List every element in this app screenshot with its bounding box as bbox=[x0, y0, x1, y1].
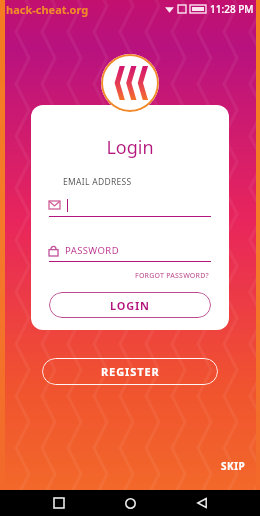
button[interactable]: Password bbox=[49, 239, 211, 261]
staticText: hack-cheat.org bbox=[6, 2, 89, 17]
button[interactable]: REGISTER bbox=[42, 358, 218, 385]
button[interactable]: Recent apps bbox=[46, 490, 72, 516]
other: Password bbox=[49, 245, 58, 256]
button[interactable]: LOGIN bbox=[49, 292, 211, 318]
other: Email bbox=[49, 201, 60, 209]
button[interactable]: FORGOT PASSWORD? bbox=[133, 269, 211, 283]
staticText: 11:28 PM bbox=[210, 2, 254, 16]
staticText: LOGIN bbox=[110, 298, 150, 313]
button[interactable]: SKIP bbox=[218, 456, 249, 476]
staticText: EMAIL ADDRESS bbox=[63, 176, 132, 188]
button[interactable]: Back bbox=[189, 490, 215, 516]
staticText: PASSWORD bbox=[65, 244, 119, 257]
staticText: FORGOT PASSWORD? bbox=[135, 271, 209, 281]
staticText: REGISTER bbox=[101, 364, 160, 379]
staticText: SKIP bbox=[221, 459, 246, 473]
button[interactable]: Home bbox=[117, 490, 143, 516]
staticText: Login bbox=[49, 135, 211, 160]
button[interactable]: Email bbox=[49, 194, 211, 216]
